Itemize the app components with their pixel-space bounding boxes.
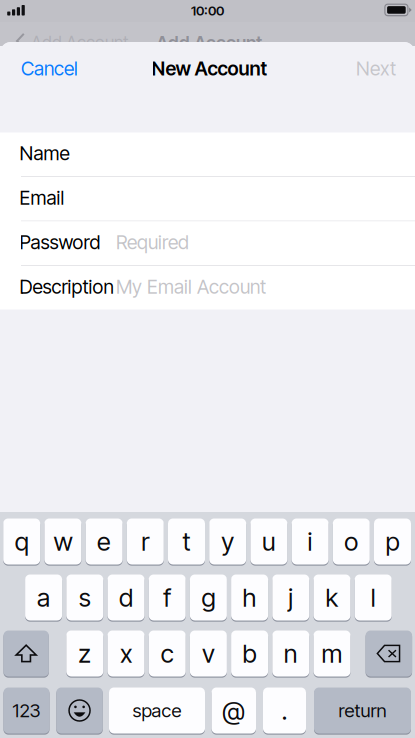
staticText: k bbox=[325, 582, 338, 613]
button[interactable]: b bbox=[231, 629, 268, 678]
button[interactable]: q bbox=[3, 517, 40, 566]
button[interactable]: Description bbox=[0, 266, 415, 309]
staticText: s bbox=[79, 582, 91, 613]
staticText: f bbox=[163, 582, 171, 613]
staticText: New Account bbox=[151, 57, 267, 80]
button[interactable]: h bbox=[231, 573, 268, 622]
button[interactable]: r bbox=[127, 517, 164, 566]
button[interactable]: m bbox=[313, 629, 350, 678]
staticText: Required bbox=[116, 231, 189, 254]
button[interactable]: i bbox=[292, 517, 329, 566]
button[interactable]: return bbox=[314, 686, 411, 735]
button[interactable]: z bbox=[66, 629, 103, 678]
staticText: @ bbox=[222, 695, 245, 726]
button[interactable]: t bbox=[168, 517, 205, 566]
button[interactable]: y bbox=[209, 517, 246, 566]
button[interactable]: w bbox=[44, 517, 81, 566]
button[interactable]: a bbox=[25, 573, 62, 622]
button[interactable]: space bbox=[109, 686, 205, 735]
staticText: . bbox=[281, 695, 287, 726]
button[interactable]: 123 bbox=[3, 686, 49, 735]
staticText: Add Account bbox=[156, 31, 262, 53]
button[interactable]: g bbox=[190, 573, 227, 622]
staticText: m bbox=[321, 638, 342, 669]
button[interactable]: Shift bbox=[3, 629, 49, 678]
staticText: 10:00 bbox=[191, 2, 224, 19]
staticText: Description bbox=[20, 275, 114, 298]
button[interactable]: v bbox=[190, 629, 227, 678]
button[interactable]: l bbox=[355, 573, 392, 622]
staticText: return bbox=[338, 699, 386, 722]
staticText: n bbox=[284, 638, 298, 669]
button[interactable]: x bbox=[107, 629, 144, 678]
staticText: v bbox=[202, 638, 215, 669]
button[interactable]: n bbox=[272, 629, 309, 678]
staticText: q bbox=[15, 526, 29, 557]
staticText: z bbox=[78, 638, 91, 669]
staticText: a bbox=[37, 582, 50, 613]
button[interactable]: Delete bbox=[366, 629, 412, 678]
staticText: r bbox=[141, 526, 149, 557]
staticText: c bbox=[161, 638, 174, 669]
button[interactable]: Next bbox=[318, 46, 396, 90]
staticText: e bbox=[97, 526, 111, 557]
staticText: y bbox=[221, 526, 234, 557]
staticText: j bbox=[288, 582, 293, 613]
button[interactable]: Emoji bbox=[56, 686, 103, 735]
button[interactable]: Email bbox=[0, 177, 415, 220]
button[interactable]: s bbox=[66, 573, 103, 622]
staticText: Email bbox=[20, 186, 65, 209]
staticText: w bbox=[53, 526, 72, 557]
staticText: l bbox=[371, 582, 376, 613]
button[interactable]: u bbox=[250, 517, 287, 566]
staticText: My Email Account bbox=[116, 275, 266, 298]
button[interactable]: c bbox=[149, 629, 186, 678]
staticText: o bbox=[344, 526, 358, 557]
button[interactable]: d bbox=[107, 573, 144, 622]
staticText: Cancel bbox=[21, 57, 78, 80]
staticText: Add Account bbox=[31, 32, 128, 53]
staticText: Next bbox=[356, 57, 396, 80]
staticText: Name bbox=[20, 142, 70, 165]
button[interactable]: Password bbox=[0, 221, 415, 265]
button[interactable]: p bbox=[374, 517, 411, 566]
staticText: b bbox=[243, 638, 257, 669]
button[interactable]: . bbox=[263, 686, 306, 735]
button[interactable]: f bbox=[149, 573, 186, 622]
staticText: h bbox=[243, 582, 257, 613]
staticText: 123 bbox=[12, 699, 40, 722]
staticText: p bbox=[385, 526, 399, 557]
button[interactable]: j bbox=[272, 573, 309, 622]
staticText: Password bbox=[20, 231, 101, 254]
staticText: g bbox=[201, 582, 215, 613]
button[interactable]: k bbox=[313, 573, 350, 622]
staticText: t bbox=[182, 526, 190, 557]
staticText: d bbox=[119, 582, 133, 613]
button[interactable]: Name bbox=[0, 132, 415, 176]
staticText: space bbox=[132, 699, 181, 722]
button[interactable]: Cancel bbox=[0, 46, 94, 90]
staticText: x bbox=[120, 638, 132, 669]
staticText: i bbox=[308, 526, 313, 557]
button[interactable]: e bbox=[86, 517, 123, 566]
button[interactable]: @ bbox=[211, 686, 256, 735]
staticText: u bbox=[262, 526, 276, 557]
button[interactable]: o bbox=[333, 517, 370, 566]
